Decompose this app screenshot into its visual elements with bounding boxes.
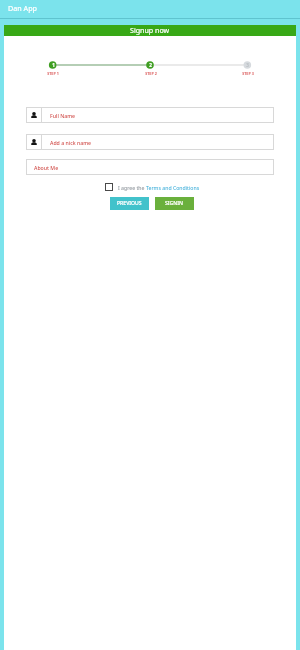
staticText: Add a nick name	[50, 139, 92, 146]
button[interactable]: Terms and Conditions	[146, 184, 200, 191]
staticText: 2	[149, 62, 152, 68]
staticText: Signup now	[130, 25, 170, 35]
button[interactable]: Person	[26, 107, 274, 123]
button[interactable]: About Me	[26, 159, 274, 175]
staticText: STEP 1	[47, 71, 59, 76]
staticText: 3	[246, 62, 249, 68]
staticText: SIGNIN	[165, 200, 184, 207]
staticText: Full Name	[50, 112, 76, 119]
button[interactable]: SIGNIN	[155, 197, 194, 210]
staticText: Dan App	[8, 3, 38, 13]
button[interactable]: Signup now	[4, 25, 296, 36]
button[interactable]: I agree the Terms and Conditions	[105, 183, 113, 191]
button[interactable]: Dan App	[0, 0, 300, 18]
staticText: STEP 3	[242, 71, 254, 76]
other: Person	[31, 112, 37, 118]
other: Person	[31, 139, 37, 145]
button[interactable]: 1	[4, 61, 102, 76]
staticText: STEP 2	[145, 71, 157, 76]
staticText: PREVIOUS	[117, 200, 142, 207]
button[interactable]: PREVIOUS	[110, 197, 149, 210]
button[interactable]: 2	[102, 61, 199, 76]
staticText: 1	[52, 62, 55, 68]
button[interactable]: Person	[26, 134, 274, 150]
staticText: About Me	[34, 164, 59, 171]
staticText: I agree the	[118, 184, 146, 191]
button[interactable]: 3	[199, 61, 296, 76]
